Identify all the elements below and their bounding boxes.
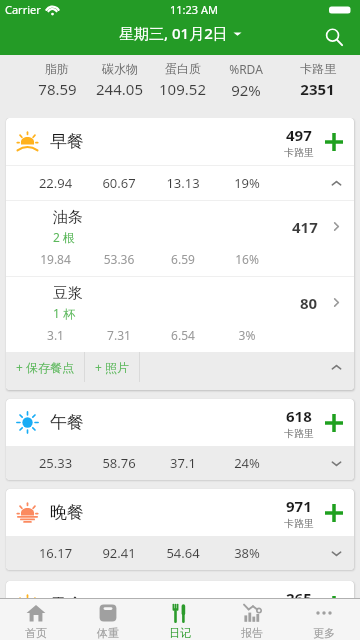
staticText: 7.31 xyxy=(87,327,151,343)
staticText: 卡路里 xyxy=(284,427,314,440)
staticText: 11:23 AM xyxy=(170,2,218,17)
staticText: 星期三, 01月2日 xyxy=(119,23,228,43)
staticText: + 保存餐点 xyxy=(16,359,74,375)
staticText: 37.1 xyxy=(151,454,215,472)
button[interactable]: 更多 xyxy=(288,599,360,640)
staticText: 58.76 xyxy=(87,454,151,472)
button[interactable]: 零食 xyxy=(6,581,354,598)
staticText: 244.05 xyxy=(96,79,143,99)
staticText: 早餐 xyxy=(50,131,84,152)
staticText: 109.52 xyxy=(159,79,206,99)
staticText: 6.59 xyxy=(151,251,215,267)
staticText: 92% xyxy=(231,80,261,100)
staticText: 971 xyxy=(286,496,312,516)
button[interactable]: 早餐 xyxy=(6,118,354,165)
button[interactable]: Add food xyxy=(314,122,354,162)
staticText: 19% xyxy=(215,174,279,192)
staticText: + 照片 xyxy=(95,359,129,375)
staticText: 24% xyxy=(215,454,279,472)
staticText: 蛋白质 xyxy=(165,61,201,76)
button[interactable]: 日记 xyxy=(144,599,216,640)
staticText: 13.13 xyxy=(151,174,215,192)
staticText: 78.59 xyxy=(38,79,77,99)
staticText: 日记 xyxy=(169,626,191,640)
button[interactable]: 22.94 xyxy=(6,166,354,200)
button[interactable]: 体重 xyxy=(72,599,144,640)
button[interactable]: 豆浆 xyxy=(6,277,354,352)
staticText: 晚餐 xyxy=(50,502,84,523)
staticText: 豆浆 xyxy=(53,284,83,303)
staticText: 265 xyxy=(286,588,312,598)
button[interactable]: Search xyxy=(322,25,346,49)
staticText: 卡路里 xyxy=(284,517,314,530)
button[interactable]: Add food xyxy=(314,493,354,533)
staticText: 22.94 xyxy=(24,174,87,192)
button[interactable]: 16.17 xyxy=(6,536,354,570)
staticText: 体重 xyxy=(97,626,119,640)
staticText: 卡路里 xyxy=(300,61,336,76)
button[interactable]: 午餐 xyxy=(6,399,354,446)
staticText: 618 xyxy=(286,406,312,426)
staticText: %RDA xyxy=(229,61,263,77)
staticText: 1 杯 xyxy=(53,305,75,321)
staticText: 脂肪 xyxy=(45,61,69,76)
staticText: 油条 xyxy=(53,208,83,227)
button[interactable]: 晚餐 xyxy=(6,489,354,536)
staticText: 更多 xyxy=(313,626,335,640)
staticText: 497 xyxy=(286,125,312,145)
staticText: 16% xyxy=(215,251,279,267)
staticText: 16.17 xyxy=(24,544,87,562)
button[interactable]: 油条 xyxy=(6,201,354,276)
staticText: Carrier xyxy=(5,2,41,17)
staticText: 零食 xyxy=(50,594,84,598)
staticText: 报告 xyxy=(241,626,263,640)
staticText: 3.1 xyxy=(24,327,87,343)
staticText: 60.67 xyxy=(87,174,151,192)
staticText: 54.64 xyxy=(151,544,215,562)
staticText: 19.84 xyxy=(24,251,87,267)
staticText: 38% xyxy=(215,544,279,562)
staticText: 首页 xyxy=(25,626,47,640)
staticText: 卡路里 xyxy=(284,146,314,159)
staticText: 417 xyxy=(292,217,318,237)
button[interactable]: + 照片 xyxy=(85,352,139,382)
staticText: 碳水物 xyxy=(102,61,138,76)
button[interactable]: 星期三, 01月2日 xyxy=(113,19,248,47)
button[interactable]: Add food xyxy=(314,585,354,598)
staticText: 6.54 xyxy=(151,327,215,343)
staticText: 92.41 xyxy=(87,544,151,562)
button[interactable]: Add food xyxy=(314,403,354,443)
button[interactable]: 25.33 xyxy=(6,446,354,480)
button[interactable]: 报告 xyxy=(216,599,288,640)
staticText: 53.36 xyxy=(87,251,151,267)
staticText: 25.33 xyxy=(24,454,87,472)
button[interactable]: + 保存餐点 xyxy=(6,352,84,382)
staticText: 午餐 xyxy=(50,412,84,433)
staticText: 2351 xyxy=(300,79,335,99)
staticText: 2 根 xyxy=(53,229,75,245)
staticText: 3% xyxy=(215,327,279,343)
button[interactable]: 首页 xyxy=(0,599,72,640)
staticText: 80 xyxy=(300,293,318,313)
